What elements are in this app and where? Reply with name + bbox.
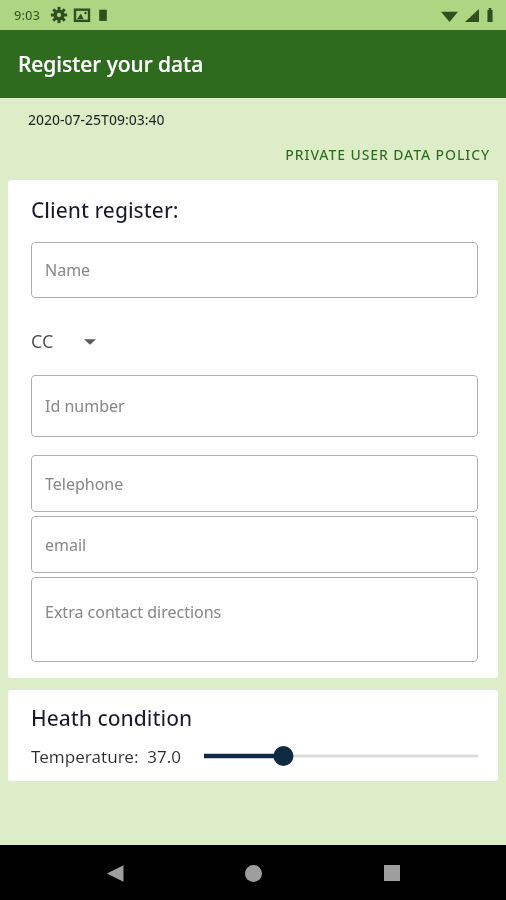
button[interactable]: Id number bbox=[31, 375, 478, 437]
button[interactable]: Home bbox=[229, 849, 277, 897]
staticText: CC bbox=[31, 329, 54, 354]
staticText: Temperature: 37.0 bbox=[31, 745, 182, 768]
staticText: PRIVATE USER DATA POLICY bbox=[285, 145, 490, 164]
staticText: Id number bbox=[45, 395, 125, 417]
staticText: Telephone bbox=[45, 473, 124, 495]
staticText: Client register: bbox=[31, 196, 179, 225]
staticText: Name bbox=[45, 259, 91, 281]
button[interactable]: Telephone bbox=[31, 455, 478, 512]
button[interactable]: email bbox=[31, 516, 478, 573]
button[interactable]: Back bbox=[91, 849, 139, 897]
staticText: Register your data bbox=[18, 50, 204, 79]
button[interactable]: Name bbox=[31, 242, 478, 298]
staticText: Heath condition bbox=[31, 704, 193, 733]
staticText: 9:03 bbox=[14, 6, 40, 24]
button[interactable]: Temperature slider bbox=[204, 743, 478, 769]
button[interactable]: CC bbox=[31, 325, 96, 358]
button[interactable]: Recents bbox=[368, 849, 416, 897]
button[interactable]: PRIVATE USER DATA POLICY bbox=[269, 141, 506, 168]
staticText: email bbox=[45, 534, 87, 556]
button[interactable]: Extra contact directions bbox=[31, 577, 478, 662]
staticText: Extra contact directions bbox=[45, 601, 222, 623]
staticText: 2020-07-25T09:03:40 bbox=[28, 110, 165, 129]
